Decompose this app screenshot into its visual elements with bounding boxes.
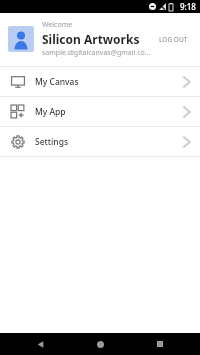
button[interactable]: My Canvas	[0, 67, 200, 96]
staticText: LOG OUT	[159, 35, 188, 44]
staticText: 9:18	[180, 1, 196, 12]
staticText: Welcome	[42, 20, 73, 30]
button[interactable]: My App	[0, 97, 200, 126]
button[interactable]: LOG OUT	[155, 31, 192, 48]
staticText: Silicon Artworks	[42, 31, 140, 47]
staticText: sample.digitalcanvas@gmail.com	[42, 48, 151, 58]
button[interactable]: Home	[80, 333, 120, 355]
staticText: My Canvas	[35, 76, 180, 88]
button[interactable]: Settings	[0, 127, 200, 156]
button[interactable]: Back	[20, 333, 60, 355]
button[interactable]: Welcome	[0, 13, 200, 66]
button[interactable]: Recent apps	[140, 333, 180, 355]
staticText: Settings	[35, 136, 180, 148]
staticText: My App	[35, 106, 180, 118]
